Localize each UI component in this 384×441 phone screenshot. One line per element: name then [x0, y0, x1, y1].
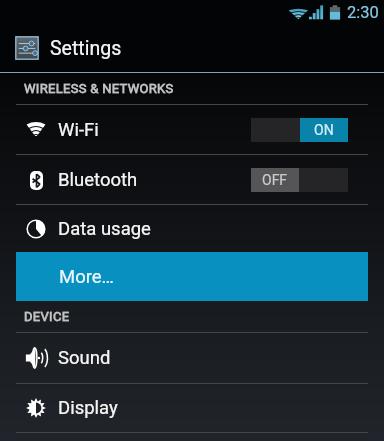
button[interactable]: Wi-Fi — [0, 105, 384, 154]
button[interactable]: Off — [251, 168, 348, 192]
staticText: Bluetooth — [58, 169, 138, 191]
staticText: Display — [58, 397, 118, 419]
staticText: 2:30 — [347, 3, 379, 22]
staticText: DEVICE — [24, 309, 70, 324]
staticText: Wi-Fi — [58, 119, 99, 141]
button[interactable]: Sound — [0, 333, 384, 383]
button[interactable]: On — [251, 118, 348, 142]
staticText: OFF — [262, 172, 288, 188]
staticText: Settings — [50, 37, 122, 60]
staticText: More… — [59, 266, 114, 288]
button[interactable]: Settings — [0, 24, 384, 72]
staticText: WIRELESS & NETWORKS — [24, 81, 174, 96]
button[interactable]: Data usage — [0, 205, 384, 252]
button[interactable]: Bluetooth — [0, 155, 384, 204]
staticText: Sound — [58, 347, 111, 369]
button[interactable]: More… — [16, 252, 368, 301]
button[interactable]: Display — [0, 384, 384, 432]
staticText: ON — [314, 122, 334, 138]
staticText: Data usage — [58, 218, 151, 240]
